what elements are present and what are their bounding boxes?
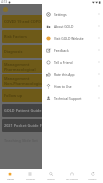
button[interactable]: My Library: [61, 169, 82, 183]
button[interactable]: About GOLD: [42, 20, 103, 32]
staticText: How to Use: [54, 84, 72, 88]
button[interactable]: Management Pharmacological: [2, 60, 101, 73]
button[interactable]: Follow up: [2, 89, 101, 102]
staticText: Management Pharmacological: [4, 62, 36, 72]
staticText: About GOLD: [54, 24, 74, 28]
staticText: Tell a Friend: [54, 60, 73, 64]
button[interactable]: Home: [0, 169, 20, 183]
button[interactable]: COVID 19 and COPD: [2, 15, 101, 28]
other: Search: [49, 172, 53, 176]
staticText: My Library: [66, 177, 78, 180]
staticText: Teaching Slide Set: [4, 138, 38, 143]
button[interactable]: Risk Factors: [2, 30, 101, 43]
staticText: Follow up: [4, 93, 23, 98]
staticText: Technical Support: [54, 96, 82, 100]
other: Technical Support: [46, 96, 51, 101]
staticText: Visit GOLD Website: [54, 36, 84, 40]
staticText: Search: [47, 177, 55, 180]
other: Rate this App: [46, 72, 51, 77]
button[interactable]: Diagnosis: [2, 45, 101, 58]
button[interactable]: Search: [40, 169, 61, 183]
staticText: Diagnosis: [4, 49, 23, 54]
staticText: GOLD Patient Guide F: [4, 108, 45, 113]
staticText: 4:13: [1, 0, 7, 4]
other: Visit GOLD Website: [46, 36, 51, 41]
button[interactable]: How to Use: [42, 80, 103, 92]
other: Content: [28, 172, 32, 176]
button[interactable]: GOLD Patient Guide F: [2, 104, 101, 117]
staticText: Content: [26, 177, 35, 180]
button[interactable]: Tell a Friend: [42, 56, 103, 68]
button[interactable]: History: [82, 169, 103, 183]
staticText: Feedback: [54, 48, 69, 52]
other: About GOLD: [46, 24, 51, 29]
staticText: COVID 19 and COPD: [4, 19, 41, 24]
other: History: [91, 172, 95, 176]
staticText: History: [88, 177, 97, 180]
button[interactable]: 2021 Pocket Guide F: [2, 119, 101, 132]
other: How to Use: [46, 84, 51, 89]
staticText: 2021 Pocket Guide F: [4, 123, 42, 128]
staticText: Settings: [54, 12, 67, 16]
other: Feedback: [46, 48, 51, 53]
button[interactable]: Teaching Slide Set: [2, 134, 101, 147]
other: Tell a Friend: [46, 60, 51, 65]
button[interactable]: Technical Support: [42, 92, 103, 104]
staticText: Risk Factors: [4, 34, 27, 39]
staticText: Home: [7, 177, 14, 180]
button[interactable]: Settings: [42, 8, 103, 20]
button[interactable]: Visit GOLD Website: [42, 32, 103, 44]
button[interactable]: Rate this App: [42, 68, 103, 80]
other: My Library: [70, 172, 74, 176]
button[interactable]: Management Non-Pharmacological: [2, 74, 101, 87]
other: Home: [8, 172, 12, 176]
other: Settings: [46, 12, 51, 17]
button[interactable]: Content: [20, 169, 40, 183]
button[interactable]: Feedback: [42, 44, 103, 56]
staticText: Rate this App: [54, 72, 75, 76]
staticText: Management Non-Pharmacological: [4, 76, 45, 86]
